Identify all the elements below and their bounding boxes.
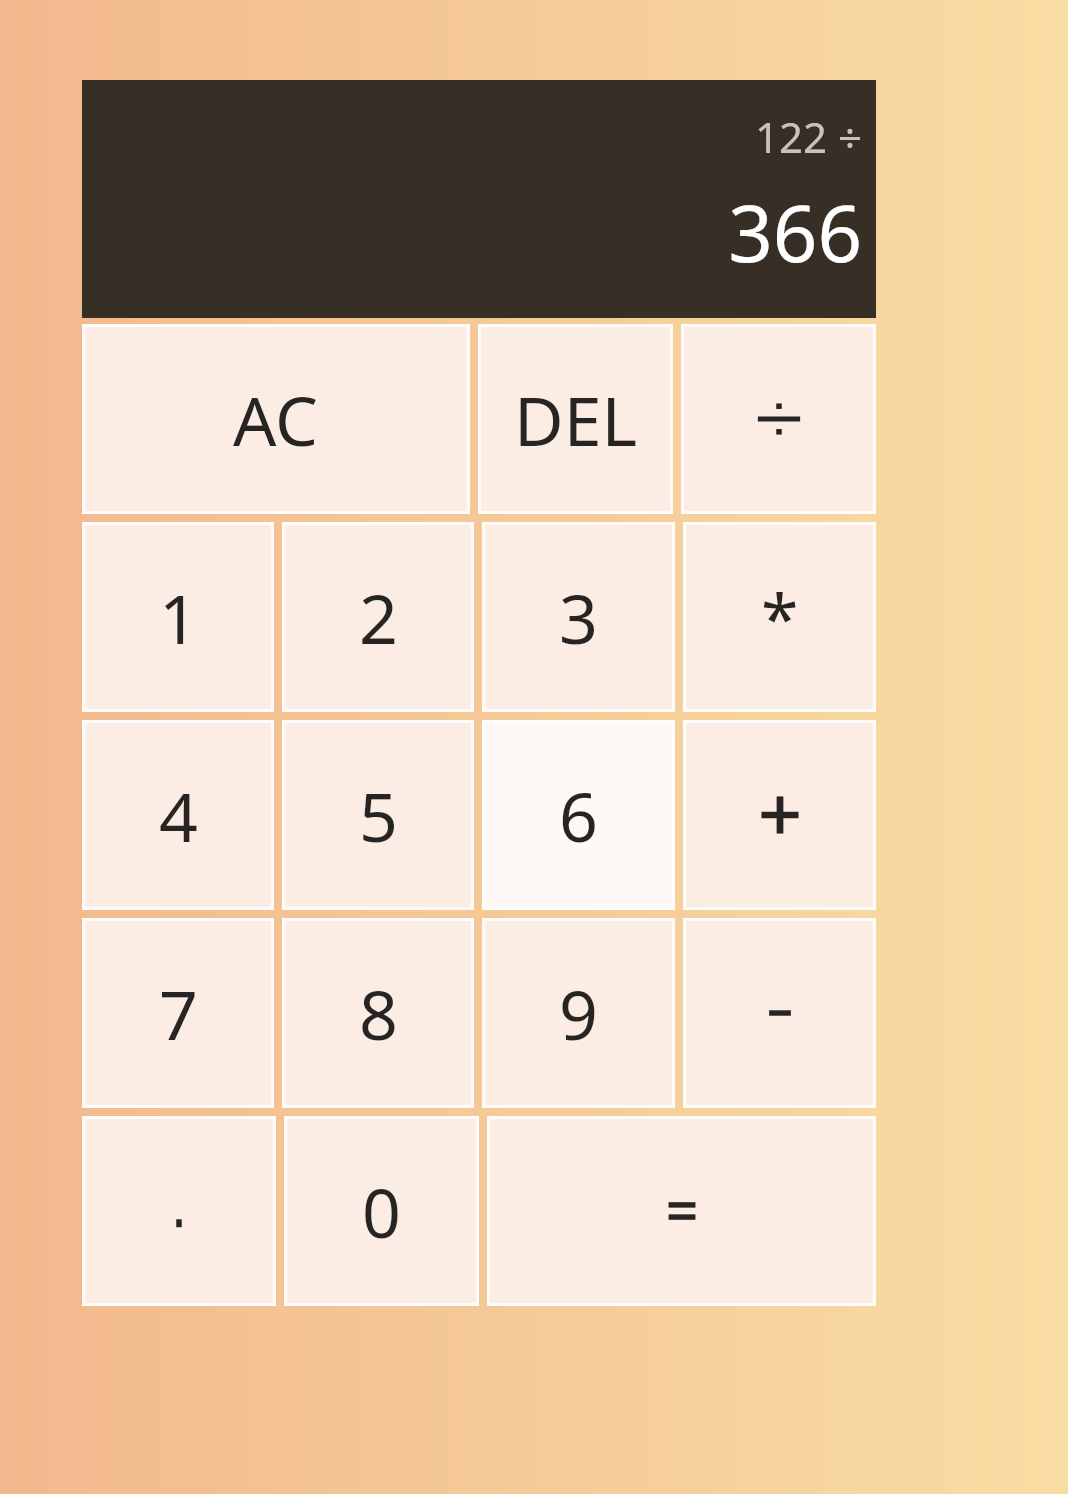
button[interactable]: 4 [82, 720, 274, 910]
button[interactable]: 0 [284, 1116, 479, 1306]
button[interactable]: Equals [487, 1116, 876, 1306]
button[interactable]: Add [683, 720, 876, 910]
staticText: 6 [559, 769, 598, 862]
staticText: 0 [362, 1165, 401, 1258]
button[interactable]: AC [82, 324, 470, 514]
staticText: 3 [559, 571, 598, 664]
staticText: 4 [159, 769, 198, 862]
staticText: AC [233, 373, 319, 466]
staticText: 8 [359, 967, 398, 1060]
button[interactable]: 3 [482, 522, 675, 712]
button[interactable]: Decimal point [82, 1116, 276, 1306]
button[interactable]: Subtract [683, 918, 876, 1108]
staticText: 366 [728, 179, 862, 285]
button[interactable]: 8 [282, 918, 474, 1108]
button[interactable]: 7 [82, 918, 274, 1108]
staticText: 5 [359, 769, 398, 862]
staticText: 122 ÷ [754, 108, 862, 165]
button[interactable]: Multiply [683, 522, 876, 712]
button[interactable]: Divide [681, 324, 876, 514]
button[interactable]: 6 [482, 720, 675, 910]
button[interactable]: 5 [282, 720, 474, 910]
staticText: 9 [559, 967, 598, 1060]
button[interactable]: 2 [282, 522, 474, 712]
staticText: 1 [159, 571, 198, 664]
staticText: DEL [514, 373, 638, 466]
button[interactable]: 9 [482, 918, 675, 1108]
staticText: * [761, 571, 799, 635]
button[interactable]: DEL [478, 324, 673, 514]
staticText: 2 [359, 571, 398, 664]
button[interactable]: 1 [82, 522, 274, 712]
staticText: 7 [159, 967, 198, 1060]
button[interactable]: 122 ÷ [82, 80, 876, 318]
